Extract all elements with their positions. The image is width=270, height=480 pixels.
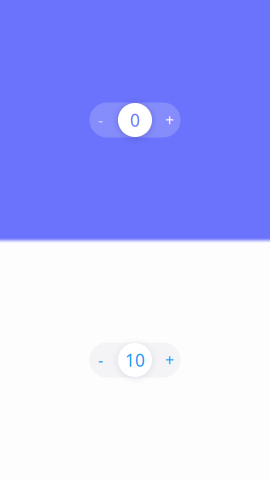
button[interactable]: Decrease — [89, 342, 111, 377]
staticText: 10 — [125, 348, 145, 371]
staticText: - — [98, 109, 103, 131]
button[interactable]: Decrease — [89, 102, 111, 137]
button[interactable]: Increase — [158, 102, 180, 137]
staticText: + — [165, 349, 174, 371]
staticText: - — [98, 349, 103, 371]
staticText: + — [165, 109, 174, 131]
staticText: 0 — [130, 108, 140, 131]
button[interactable]: Increase — [158, 342, 180, 377]
